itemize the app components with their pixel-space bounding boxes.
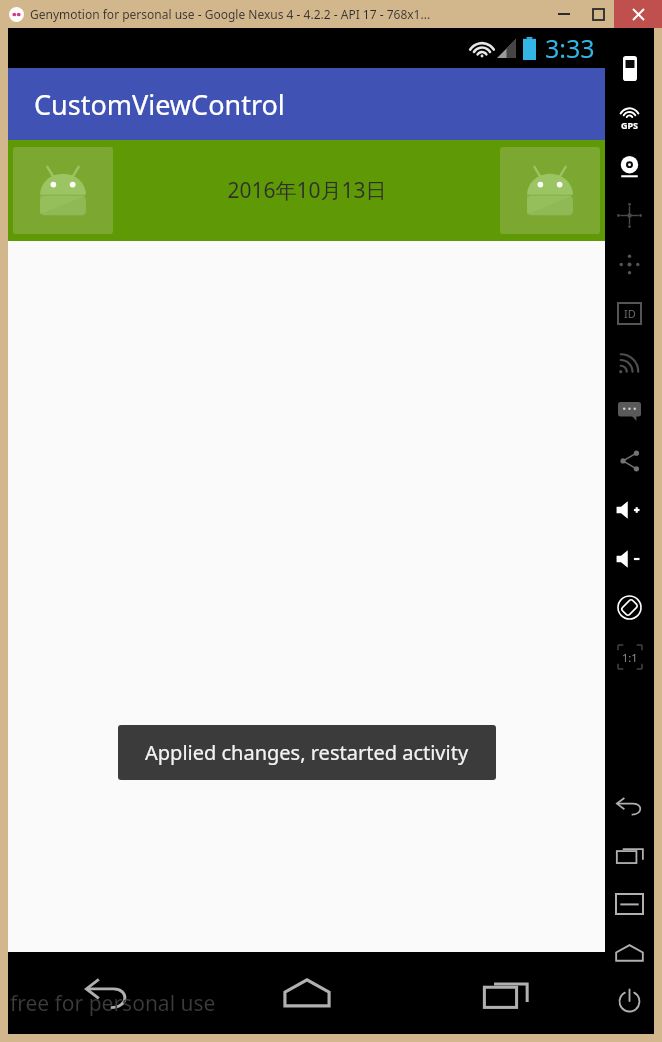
staticText: free for personal use (10, 989, 216, 1018)
staticText: Genymotion for personal use - Google Nex… (30, 6, 431, 22)
button[interactable]: Home (207, 952, 406, 1034)
button[interactable]: Minimize (546, 0, 582, 28)
button[interactable]: Power (605, 977, 654, 1026)
staticText: GPS (621, 119, 639, 131)
staticText: 2016年10月13日 (227, 176, 387, 205)
staticText: Applied changes, restarted activity (145, 739, 469, 766)
button[interactable]: Rotate (605, 583, 654, 632)
staticText: 3:33 (545, 31, 595, 65)
button[interactable]: Back (8, 952, 207, 1034)
button[interactable]: Recent apps (406, 952, 605, 1034)
button[interactable]: Camera (605, 142, 654, 191)
staticText: 1:1 (622, 650, 638, 665)
button[interactable]: Menu (605, 879, 654, 928)
button[interactable]: Home (605, 928, 654, 977)
button[interactable]: Network (605, 338, 654, 387)
staticText: ID (624, 306, 636, 321)
button[interactable]: Scale 1 to 1 (605, 632, 654, 681)
button[interactable]: Maximize (582, 0, 614, 28)
button[interactable]: Battery (605, 44, 654, 93)
button[interactable]: Share (605, 436, 654, 485)
button[interactable]: Recent apps (605, 830, 654, 879)
button[interactable]: SMS (605, 387, 654, 436)
button[interactable]: Accelerometer (605, 191, 654, 240)
staticText: CustomViewControl (34, 86, 285, 123)
button[interactable]: Close (614, 0, 662, 28)
button[interactable]: Identifiers (605, 289, 654, 338)
button[interactable]: Android image button (13, 147, 113, 234)
button[interactable]: Multi touch (605, 240, 654, 289)
button[interactable]: Android image button (500, 147, 600, 234)
button[interactable]: Volume down (605, 534, 654, 583)
button[interactable]: GPS (605, 93, 654, 142)
button[interactable]: Volume up (605, 485, 654, 534)
button[interactable]: Back (605, 781, 654, 830)
